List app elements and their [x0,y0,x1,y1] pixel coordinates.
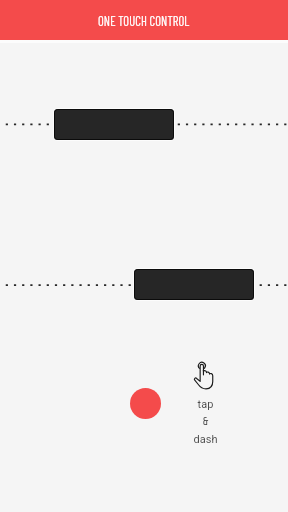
button[interactable]: ONE TOUCH CONTROL [0,0,288,40]
button[interactable]: Obstacle [134,269,254,300]
button[interactable]: Tap to dash [184,357,225,445]
staticText: tap [185,398,226,415]
button[interactable]: Obstacle [54,109,174,140]
other: Tap to dash [193,360,215,390]
staticText: ONE TOUCH CONTROL [98,13,190,28]
other: Player ball [130,388,161,419]
staticText: & [185,415,226,432]
staticText: dash [185,433,226,450]
